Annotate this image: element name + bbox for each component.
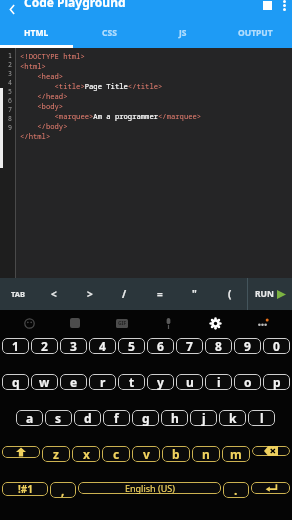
button[interactable]: RUN: [248, 278, 292, 310]
button[interactable]: Back: [4, 1, 20, 17]
button[interactable]: Enter: [251, 482, 290, 494]
button[interactable]: ": [177, 278, 212, 310]
button[interactable]: HTML: [0, 18, 73, 48]
button[interactable]: =: [142, 278, 177, 310]
staticText: </html>: [20, 131, 51, 141]
button[interactable]: Emoji: [6, 310, 52, 336]
staticText: a: [26, 410, 34, 426]
button[interactable]: .: [223, 482, 249, 498]
staticText: 0: [273, 338, 280, 354]
staticText: <title>Page Title</title>: [20, 81, 163, 91]
button[interactable]: 6: [147, 338, 174, 354]
button[interactable]: t: [118, 374, 145, 390]
button[interactable]: 5: [118, 338, 145, 354]
button[interactable]: m: [222, 446, 250, 462]
staticText: 8: [0, 114, 12, 123]
staticText: 4: [0, 78, 12, 87]
staticText: q: [12, 374, 20, 390]
button[interactable]: 8: [205, 338, 232, 354]
button[interactable]: /: [107, 278, 142, 310]
button[interactable]: x: [72, 446, 100, 462]
button[interactable]: d: [74, 410, 101, 426]
button[interactable]: l: [248, 410, 275, 426]
button[interactable]: Voice input: [145, 310, 192, 336]
staticText: /: [122, 287, 127, 301]
button[interactable]: 0: [263, 338, 290, 354]
button[interactable]: i: [205, 374, 232, 390]
staticText: t: [129, 374, 135, 390]
staticText: z: [53, 446, 59, 462]
staticText: <!DOCTYPE html>: [20, 51, 85, 61]
staticText: 1: [0, 51, 12, 60]
button[interactable]: y: [147, 374, 174, 390]
button[interactable]: Backspace: [252, 446, 290, 456]
button[interactable]: ,: [50, 482, 76, 498]
button[interactable]: 4: [89, 338, 116, 354]
button[interactable]: Stickers: [52, 310, 98, 336]
button[interactable]: CSS: [73, 18, 146, 48]
staticText: OUTPUT: [238, 27, 273, 39]
button[interactable]: <: [36, 278, 72, 310]
staticText: e: [70, 374, 78, 390]
button[interactable]: Save: [258, 0, 276, 14]
button[interactable]: e: [60, 374, 87, 390]
staticText: =: [157, 287, 163, 301]
button[interactable]: r: [89, 374, 116, 390]
button[interactable]: g: [132, 410, 159, 426]
button[interactable]: j: [190, 410, 217, 426]
staticText: HTML: [24, 27, 49, 39]
button[interactable]: b: [162, 446, 190, 462]
staticText: </head>: [20, 91, 68, 101]
staticText: 8: [215, 338, 222, 354]
button[interactable]: 3: [60, 338, 87, 354]
button[interactable]: z: [42, 446, 70, 462]
button[interactable]: s: [45, 410, 72, 426]
staticText: v: [143, 446, 150, 462]
staticText: u: [186, 374, 194, 390]
button[interactable]: w: [31, 374, 58, 390]
button[interactable]: a: [16, 410, 43, 426]
button[interactable]: q: [2, 374, 29, 390]
button[interactable]: English (US): [78, 482, 221, 494]
staticText: 1: [12, 338, 19, 354]
button[interactable]: Settings: [192, 310, 239, 336]
button[interactable]: (: [212, 278, 247, 310]
button[interactable]: More options: [239, 310, 286, 336]
staticText: 5: [0, 87, 12, 96]
button[interactable]: o: [234, 374, 261, 390]
button[interactable]: More options: [276, 0, 292, 13]
staticText: 7: [186, 338, 193, 354]
staticText: p: [273, 374, 281, 390]
button[interactable]: n: [192, 446, 220, 462]
button[interactable]: f: [103, 410, 130, 426]
button[interactable]: JS: [146, 18, 219, 48]
button[interactable]: >: [72, 278, 107, 310]
button[interactable]: GIF: [98, 310, 145, 336]
button[interactable]: 1: [2, 338, 29, 354]
button[interactable]: v: [132, 446, 160, 462]
staticText: 6: [0, 96, 12, 105]
button[interactable]: p: [263, 374, 290, 390]
button[interactable]: c: [102, 446, 130, 462]
staticText: 9: [0, 123, 12, 132]
button[interactable]: Shift: [2, 446, 40, 458]
staticText: y: [157, 374, 164, 390]
staticText: 4: [99, 338, 106, 354]
staticText: o: [244, 374, 252, 390]
button[interactable]: u: [176, 374, 203, 390]
staticText: g: [142, 410, 150, 426]
button[interactable]: 2: [31, 338, 58, 354]
button[interactable]: TAB: [0, 278, 36, 310]
button[interactable]: h: [161, 410, 188, 426]
button[interactable]: !#1: [2, 482, 48, 496]
button[interactable]: 7: [176, 338, 203, 354]
staticText: m: [230, 446, 242, 462]
staticText: 5: [128, 338, 135, 354]
button[interactable]: 9: [234, 338, 261, 354]
button[interactable]: OUTPUT: [219, 18, 292, 48]
staticText: f: [114, 410, 119, 426]
button[interactable]: k: [219, 410, 246, 426]
staticText: s: [55, 410, 62, 426]
staticText: 9: [244, 338, 251, 354]
staticText: 6: [157, 338, 164, 354]
